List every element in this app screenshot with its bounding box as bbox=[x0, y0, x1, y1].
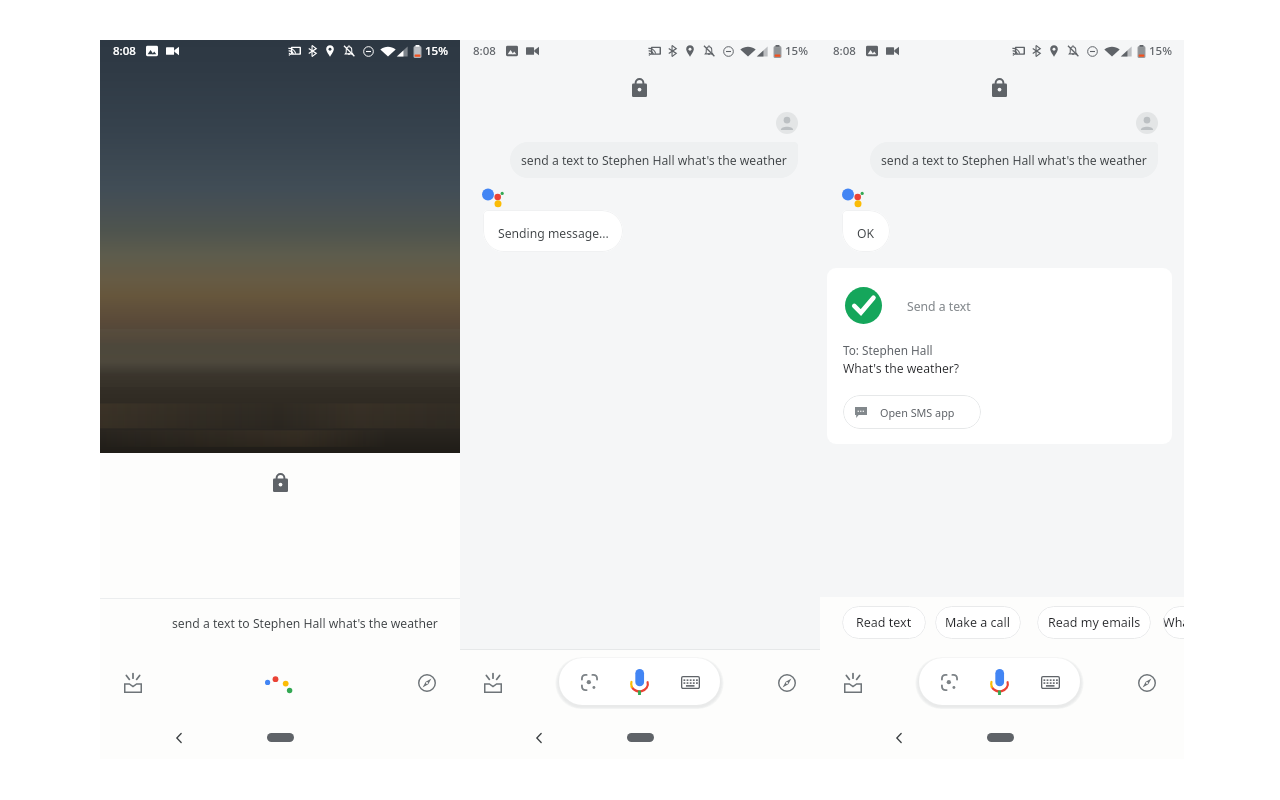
button[interactable]: Snapshot bbox=[481, 672, 505, 694]
button[interactable]: Sending message... bbox=[483, 210, 623, 252]
button[interactable]: Google Lens bbox=[919, 658, 1080, 705]
button[interactable]: Snapshot bbox=[121, 672, 145, 694]
button[interactable]: Explore bbox=[1135, 672, 1159, 694]
staticText: 15% bbox=[785, 43, 808, 59]
button[interactable]: send a text to Stephen Hall what's the w… bbox=[870, 142, 1158, 178]
button[interactable]: Home bbox=[987, 733, 1014, 742]
staticText: 8:08 bbox=[113, 43, 136, 59]
staticText: 8:08 bbox=[833, 43, 856, 59]
button[interactable]: What's the weather bbox=[1163, 606, 1184, 639]
button[interactable]: Snapshot bbox=[841, 672, 865, 694]
button[interactable]: Back bbox=[168, 727, 190, 749]
button[interactable]: Google Lens bbox=[576, 669, 602, 695]
staticText: Make a call bbox=[945, 614, 1011, 631]
staticText: Open SMS app bbox=[880, 405, 955, 420]
button[interactable]: Read text bbox=[842, 606, 926, 639]
staticText: 8:08 bbox=[473, 43, 496, 59]
staticText: send a text to Stephen Hall what's the w… bbox=[521, 152, 787, 169]
button[interactable]: Voice search bbox=[986, 669, 1012, 695]
button[interactable]: send a text to Stephen Hall what's the w… bbox=[510, 142, 798, 178]
button[interactable]: Send a text bbox=[827, 268, 1172, 444]
button[interactable]: Make a call bbox=[935, 606, 1021, 639]
button[interactable]: Back bbox=[888, 727, 910, 749]
staticText: Send a text bbox=[907, 298, 971, 315]
button[interactable]: OK bbox=[842, 210, 890, 252]
button[interactable]: Google Lens bbox=[559, 658, 720, 705]
button[interactable]: Back bbox=[528, 727, 550, 749]
staticText: send a text to Stephen Hall what's the w… bbox=[881, 152, 1147, 169]
staticText: Sending message... bbox=[498, 225, 609, 242]
button[interactable]: Read my emails bbox=[1037, 606, 1151, 639]
button[interactable]: Explore bbox=[775, 672, 799, 694]
staticText: What's the weather bbox=[1163, 614, 1184, 631]
staticText: 15% bbox=[1149, 43, 1172, 59]
staticText: What's the weather? bbox=[843, 360, 960, 377]
button[interactable]: Open SMS app bbox=[843, 395, 981, 429]
button[interactable]: Voice search bbox=[626, 669, 652, 695]
button[interactable]: Home bbox=[627, 733, 654, 742]
button[interactable]: Keyboard bbox=[1037, 669, 1063, 695]
staticText: To: Stephen Hall bbox=[843, 342, 933, 358]
staticText: Read text bbox=[856, 614, 912, 631]
staticText: send a text to Stephen Hall what's the w… bbox=[172, 615, 438, 632]
button[interactable]: Google Lens bbox=[936, 669, 962, 695]
button[interactable]: Explore bbox=[415, 672, 439, 694]
button[interactable]: Assistant bbox=[263, 674, 294, 695]
button[interactable]: Home bbox=[267, 733, 294, 742]
staticText: OK bbox=[857, 225, 875, 242]
staticText: Read my emails bbox=[1048, 614, 1141, 631]
button[interactable]: Keyboard bbox=[677, 669, 703, 695]
staticText: 15% bbox=[425, 43, 448, 59]
